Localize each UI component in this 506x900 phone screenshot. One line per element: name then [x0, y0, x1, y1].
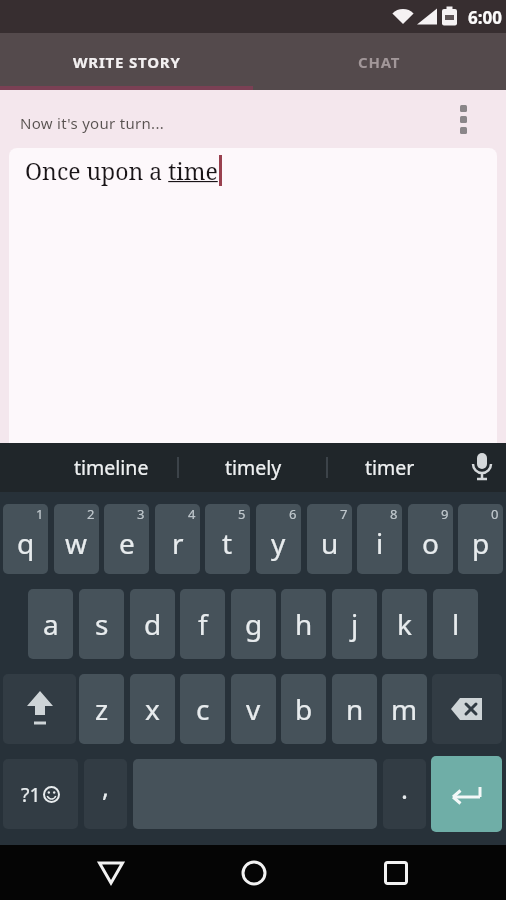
button[interactable] — [219, 845, 289, 900]
staticText: Once upon a time — [25, 155, 218, 186]
button[interactable]: s — [79, 589, 124, 659]
staticText: 7 — [340, 505, 348, 523]
button[interactable]: h — [281, 589, 326, 659]
staticText: w — [65, 524, 88, 562]
staticText: timely — [225, 454, 282, 481]
staticText: j — [351, 605, 359, 643]
staticText: b — [295, 690, 313, 728]
staticText: 4 — [188, 505, 196, 523]
button[interactable]: x — [130, 674, 175, 744]
button[interactable] — [432, 674, 502, 744]
staticText: p — [472, 524, 490, 562]
staticText: y — [271, 524, 286, 562]
staticText: 9 — [441, 505, 449, 523]
button[interactable]: v — [231, 674, 276, 744]
button[interactable]: l — [433, 589, 478, 659]
staticText: t — [222, 524, 233, 562]
staticText: 6 — [289, 505, 297, 523]
staticText: i — [376, 524, 384, 562]
button[interactable]: p — [458, 504, 503, 574]
button[interactable]: i — [357, 504, 402, 574]
staticText: 6:00 — [468, 6, 502, 29]
button[interactable]: k — [382, 589, 427, 659]
button[interactable]: d — [130, 589, 175, 659]
button[interactable] — [460, 105, 467, 134]
button[interactable] — [431, 756, 502, 832]
staticText: timer — [365, 454, 415, 481]
button[interactable]: o — [408, 504, 453, 574]
button[interactable] — [462, 451, 502, 485]
staticText: Now it's your turn... — [20, 113, 165, 133]
staticText: n — [346, 690, 364, 728]
staticText: h — [295, 605, 313, 643]
staticText: v — [246, 690, 261, 728]
staticText: a — [43, 605, 59, 643]
staticText: 8 — [390, 505, 398, 523]
staticText: k — [397, 605, 412, 643]
staticText: e — [119, 524, 135, 562]
staticText: timeline — [74, 454, 149, 481]
button[interactable]: z — [79, 674, 124, 744]
staticText: f — [198, 605, 208, 643]
staticText: q — [17, 524, 35, 562]
button[interactable]: WRITE STORY — [0, 33, 253, 90]
button[interactable]: r — [155, 504, 200, 574]
staticText: u — [321, 524, 339, 562]
button[interactable]: timeline — [36, 443, 186, 492]
button[interactable] — [361, 845, 431, 900]
button[interactable]: m — [382, 674, 427, 744]
button[interactable]: c — [180, 674, 225, 744]
button[interactable]: e — [104, 504, 149, 574]
button[interactable]: g — [231, 589, 276, 659]
staticText: s — [95, 605, 109, 643]
button[interactable]: u — [307, 504, 352, 574]
staticText: 2 — [87, 505, 95, 523]
staticText: m — [391, 690, 418, 728]
staticText: z — [95, 690, 109, 728]
button[interactable]: b — [281, 674, 326, 744]
button[interactable]: Once upon a time — [9, 148, 497, 443]
button[interactable]: timer — [315, 443, 465, 492]
staticText: 0 — [491, 505, 499, 523]
button[interactable]: q — [3, 504, 48, 574]
button[interactable]: CHAT — [253, 33, 506, 90]
button[interactable] — [3, 674, 76, 744]
staticText: c — [196, 690, 210, 728]
button[interactable]: . — [383, 759, 426, 829]
staticText: r — [172, 524, 184, 562]
staticText: g — [245, 605, 263, 643]
staticText: d — [144, 605, 162, 643]
button[interactable]: timely — [178, 443, 328, 492]
staticText: o — [422, 524, 439, 562]
button[interactable] — [76, 845, 146, 900]
button[interactable]: f — [180, 589, 225, 659]
button[interactable]: j — [332, 589, 377, 659]
staticText: 5 — [238, 505, 246, 523]
staticText: 3 — [137, 505, 145, 523]
button[interactable]: t — [205, 504, 250, 574]
staticText: x — [145, 690, 160, 728]
staticText: CHAT — [358, 52, 401, 72]
staticText: . — [401, 771, 408, 806]
button[interactable]: w — [54, 504, 99, 574]
button[interactable]: a — [28, 589, 73, 659]
staticText: l — [452, 605, 460, 643]
staticText: WRITE STORY — [73, 52, 181, 72]
button[interactable]: y — [256, 504, 301, 574]
staticText: 1 — [36, 505, 44, 523]
staticText: , — [102, 769, 109, 804]
button[interactable]: ?1 — [3, 759, 78, 829]
button[interactable]: n — [332, 674, 377, 744]
staticText: ?1 — [21, 781, 41, 808]
button[interactable]: , — [84, 759, 127, 829]
